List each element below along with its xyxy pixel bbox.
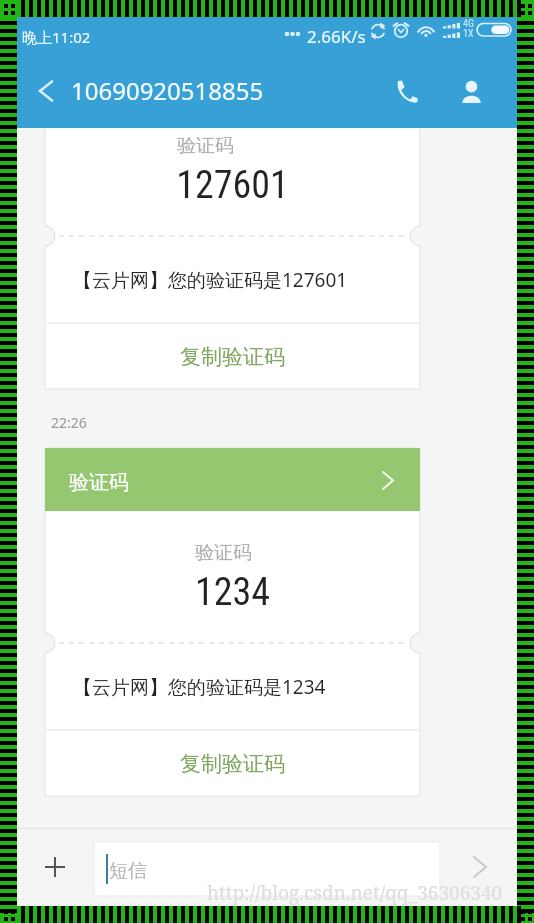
button[interactable]: Add attachment: [29, 841, 81, 893]
button[interactable]: Call: [379, 65, 431, 117]
staticText: 【云片网】您的验证码是1234: [73, 674, 326, 700]
staticText: 复制验证码: [180, 751, 285, 777]
staticText: 复制验证码: [180, 344, 285, 370]
staticText: 验证码: [18, 134, 393, 158]
staticText: 1X: [463, 28, 474, 40]
staticText: http://blog.csdn.net/qq_36306340: [207, 880, 503, 906]
staticText: 2.66K/s: [307, 25, 366, 48]
button[interactable]: Send: [458, 843, 510, 895]
staticText: 【云片网】您的验证码是127601: [73, 267, 348, 293]
staticText: 127601: [45, 163, 420, 208]
button[interactable]: 验证码: [45, 448, 420, 511]
staticText: 10690920518855: [71, 74, 264, 107]
button[interactable]: Back: [20, 65, 72, 117]
button[interactable]: 验证码: [45, 41, 420, 104]
staticText: 1234: [45, 570, 420, 615]
button[interactable]: 短信: [94, 842, 440, 896]
staticText: 22:26: [51, 413, 87, 432]
button[interactable]: Contact: [445, 65, 497, 117]
staticText: 短信: [109, 859, 147, 883]
staticText: 验证码: [36, 541, 411, 565]
staticText: 4G: [463, 18, 474, 30]
staticText: 验证码: [69, 470, 129, 495]
button[interactable]: 复制验证码: [45, 731, 420, 796]
staticText: 晚上11:02: [22, 27, 91, 47]
staticText: 验证码: [69, 63, 129, 88]
button[interactable]: 复制验证码: [45, 324, 420, 389]
